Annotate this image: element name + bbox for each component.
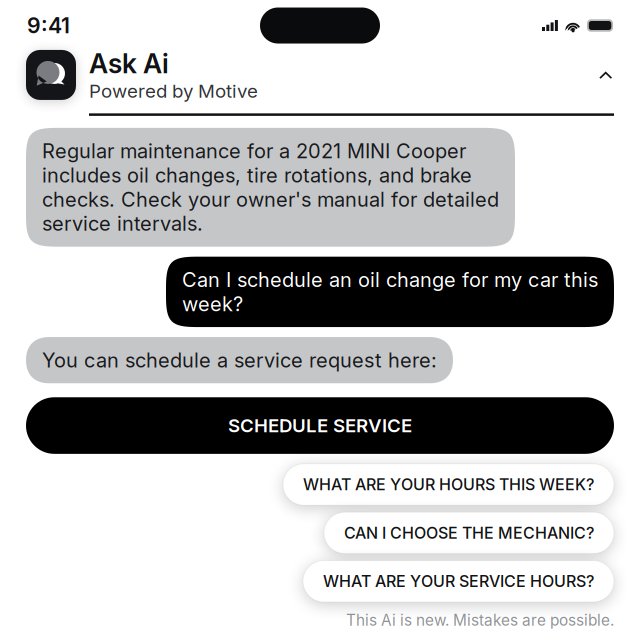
button[interactable]: WHAT ARE YOUR SERVICE HOURS? [303, 561, 614, 602]
button[interactable]: CAN I CHOOSE THE MECHANIC? [324, 512, 614, 554]
staticText: SCHEDULE SERVICE [228, 414, 412, 437]
staticText: 9:41 [27, 13, 70, 38]
button[interactable]: WHAT ARE YOUR HOURS THIS WEEK? [283, 464, 614, 505]
staticText: Powered by Motive [89, 80, 258, 102]
staticText: Ask Ai [89, 47, 169, 80]
staticText: WHAT ARE YOUR HOURS THIS WEEK? [303, 475, 594, 494]
staticText: WHAT ARE YOUR SERVICE HOURS? [323, 572, 594, 591]
staticText: This Ai is new. Mistakes are possible. [346, 611, 614, 629]
button[interactable]: Collapse [587, 61, 614, 89]
staticText: Can I schedule an oil change for my car … [182, 268, 598, 316]
button[interactable]: SCHEDULE SERVICE [26, 397, 614, 454]
staticText: CAN I CHOOSE THE MECHANIC? [344, 523, 594, 543]
staticText: Regular maintenance for a 2021 MINI Coop… [42, 139, 499, 236]
staticText: You can schedule a service request here: [42, 348, 437, 372]
